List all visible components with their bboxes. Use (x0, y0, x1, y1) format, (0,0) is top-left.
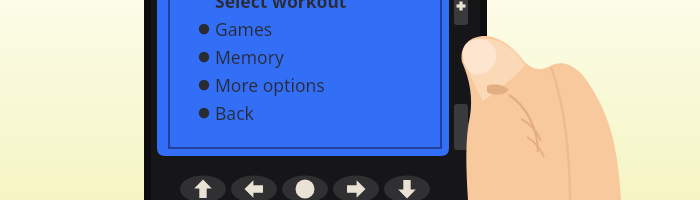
button[interactable]: Up (180, 176, 226, 200)
button[interactable]: Down (384, 176, 430, 200)
button[interactable]: Left (231, 176, 277, 200)
button[interactable]: Select (282, 176, 328, 200)
button[interactable]: Right (333, 176, 379, 200)
